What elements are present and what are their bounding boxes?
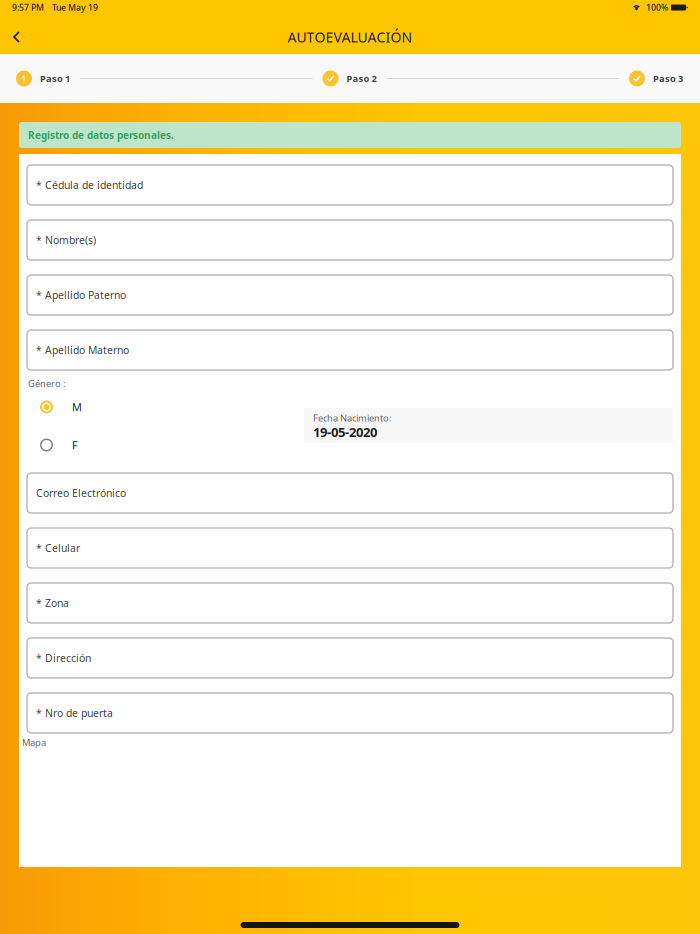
button[interactable]: Back bbox=[0, 20, 34, 54]
button[interactable]: F bbox=[27, 426, 304, 464]
button[interactable]: Fecha Nacimiento: bbox=[304, 391, 673, 443]
staticText: Registro de datos personales. bbox=[28, 128, 174, 142]
staticText: 1 bbox=[21, 73, 26, 84]
button[interactable]: * Nro de puerta bbox=[27, 693, 673, 733]
button[interactable]: * Celular bbox=[27, 528, 673, 568]
staticText: M bbox=[72, 400, 82, 414]
staticText: * Zona bbox=[36, 596, 69, 610]
staticText: * Nombre(s) bbox=[36, 233, 96, 247]
button[interactable]: * Apellido Paterno bbox=[27, 275, 673, 315]
button[interactable]: * Nombre(s) bbox=[27, 220, 673, 260]
button[interactable]: * Zona bbox=[27, 583, 673, 623]
staticText: * Cédula de identidad bbox=[36, 178, 143, 192]
staticText: 19-05-2020 bbox=[313, 423, 377, 441]
staticText: * Apellido Materno bbox=[36, 343, 129, 357]
staticText: Tue May 19 bbox=[52, 2, 98, 13]
button[interactable]: Correo Electrónico bbox=[27, 473, 673, 513]
staticText: * Dirección bbox=[36, 651, 91, 665]
staticText: Fecha Nacimiento: bbox=[313, 412, 392, 424]
staticText: * Nro de puerta bbox=[36, 706, 113, 720]
button[interactable]: M bbox=[27, 388, 304, 426]
staticText: Paso 2 bbox=[346, 72, 376, 85]
staticText: 9:57 PM bbox=[12, 2, 44, 13]
staticText: Género : bbox=[28, 377, 66, 390]
staticText: Correo Electrónico bbox=[36, 486, 126, 500]
staticText: AUTOEVALUACIÓN bbox=[287, 27, 412, 47]
staticText: * Celular bbox=[36, 541, 80, 555]
button[interactable]: * Apellido Materno bbox=[27, 330, 673, 370]
staticText: Mapa bbox=[22, 736, 46, 749]
button[interactable]: * Dirección bbox=[27, 638, 673, 678]
staticText: F bbox=[72, 438, 78, 452]
staticText: Paso 1 bbox=[40, 72, 70, 85]
staticText: 100% bbox=[646, 2, 668, 13]
staticText: * Apellido Paterno bbox=[36, 288, 126, 302]
staticText: Paso 3 bbox=[653, 72, 683, 85]
button[interactable]: * Cédula de identidad bbox=[27, 165, 673, 205]
